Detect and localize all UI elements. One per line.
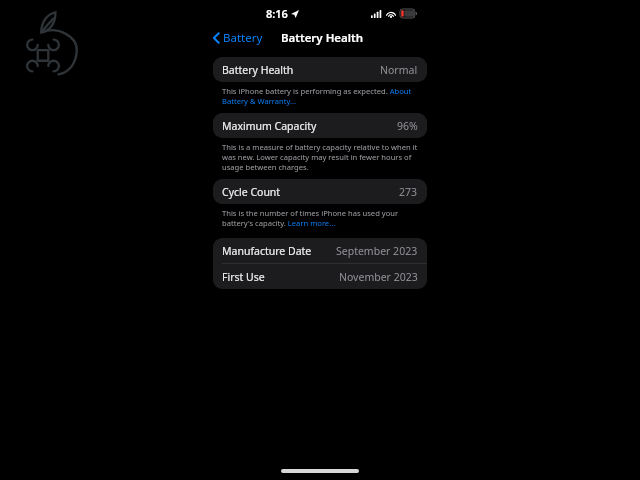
staticText: Battery [223, 30, 263, 46]
staticText: This iPhone battery is performing as exp… [222, 86, 418, 106]
staticText: 8:16 [266, 6, 288, 21]
staticText: This is the number of times iPhone has u… [222, 208, 418, 228]
button[interactable]: Cycle Count [213, 179, 427, 204]
staticText: Maximum Capacity [222, 119, 317, 133]
button[interactable]: Battery [209, 28, 269, 48]
button[interactable]: Battery Health [213, 57, 427, 82]
button[interactable]: First Use [213, 264, 427, 289]
staticText: Cycle Count [222, 185, 281, 199]
staticText: November 2023 [339, 270, 418, 284]
staticText: This is a measure of battery capacity re… [222, 142, 418, 172]
staticText: First Use [222, 270, 265, 284]
staticText: Battery Health [281, 30, 364, 46]
staticText: Battery Health [222, 63, 294, 77]
button[interactable]: Manufacture Date [213, 238, 427, 263]
staticText: 273 [399, 185, 418, 199]
staticText: Manufacture Date [222, 244, 312, 258]
staticText: Normal [380, 63, 418, 77]
staticText: 96% [397, 119, 418, 133]
button[interactable]: Maximum Capacity [213, 113, 427, 138]
staticText: September 2023 [336, 244, 418, 258]
